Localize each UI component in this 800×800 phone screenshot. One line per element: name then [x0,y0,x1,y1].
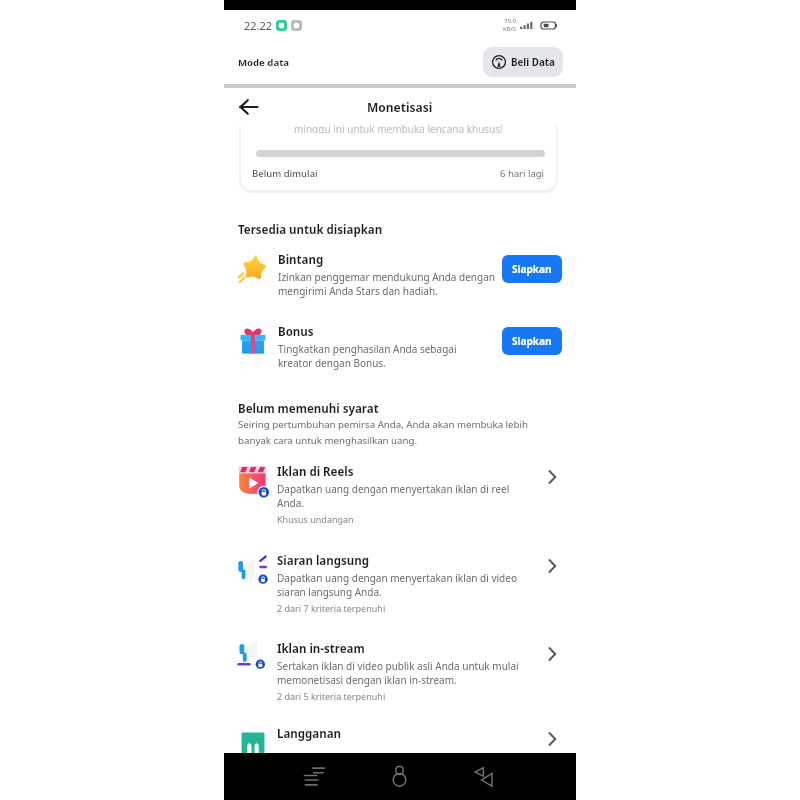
staticText: Dapatkan uang dengan menyertakan iklan d… [277,571,517,599]
staticText: Khusus undangan [277,513,354,525]
button[interactable]: Back [467,761,500,792]
staticText: Langganan [277,726,342,742]
staticText: 22.22 [244,18,273,33]
staticText: 75.0 [504,17,516,25]
staticText: KB/S [503,25,517,33]
staticText: Tersedia untuk disiapkan [238,222,383,238]
staticText: Iklan in-stream [277,641,365,657]
staticText: Dapatkan uang dengan menyertakan iklan d… [277,482,510,510]
button[interactable]: Langganan [224,726,576,762]
button[interactable]: Back [234,93,262,121]
button[interactable]: Siapkan [502,327,562,355]
staticText: Seiring pertumbuhan pemirsa Anda, Anda a… [238,418,529,447]
staticText: minggu ini untuk membuka lencana khusus! [294,124,503,133]
staticText: Siapkan [512,334,552,348]
button[interactable]: Iklan in-stream [224,641,576,702]
button[interactable]: minggu ini untuk membuka lencana khusus! [241,124,556,190]
staticText: Monetisasi [367,99,433,115]
button[interactable]: Recents [298,761,331,792]
staticText: 2 dari 7 kriteria terpenuhi [277,602,386,614]
button[interactable]: Bonus [224,324,576,370]
staticText: Mode data [238,56,290,69]
button[interactable]: Iklan di Reels [224,464,576,525]
staticText: Sertakan iklan di video publik asli Anda… [277,659,519,687]
staticText: 6 hari lagi [500,167,545,180]
button[interactable]: Siapkan [502,255,562,283]
button[interactable]: Home [383,761,416,792]
staticText: Bonus [278,324,314,340]
staticText: Beli Data [511,56,555,69]
staticText: Belum dimulai [252,167,318,180]
button[interactable]: Beli Data [483,47,563,77]
staticText: Belum memenuhi syarat [238,401,379,417]
staticText: Izinkan penggemar mendukung Anda dengan … [278,270,495,298]
staticText: Tingkatkan penghasilan Anda sebagai krea… [278,342,457,370]
staticText: Bintang [278,252,324,268]
staticText: 2 dari 5 kriteria terpenuhi [277,690,386,702]
staticText: Siaran langsung [277,553,369,569]
button[interactable]: Siaran langsung [224,553,576,614]
button[interactable]: Bintang [224,252,576,298]
staticText: Siapkan [512,262,552,276]
staticText: Iklan di Reels [277,464,354,480]
